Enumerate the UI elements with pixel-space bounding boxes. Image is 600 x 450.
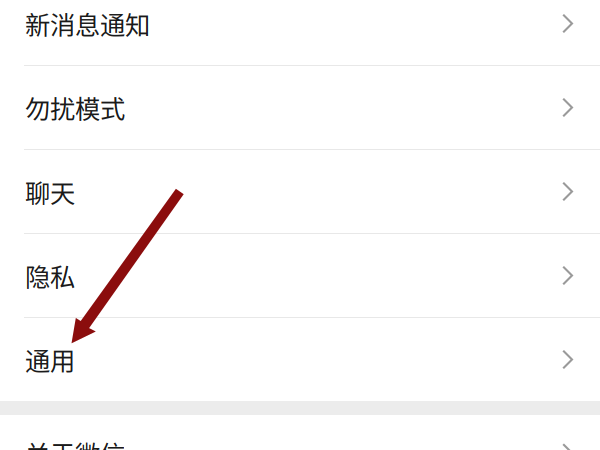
button[interactable]: 勿扰模式: [0, 66, 600, 149]
staticText: 关于微信: [25, 435, 125, 450]
staticText: 新消息通知: [25, 5, 150, 42]
button[interactable]: 关于微信: [0, 415, 600, 450]
staticText: 通用: [25, 341, 75, 378]
button[interactable]: 新消息通知: [0, 0, 600, 65]
staticText: 勿扰模式: [25, 89, 125, 126]
button[interactable]: 隐私: [0, 234, 600, 317]
button[interactable]: 通用: [0, 318, 600, 401]
staticText: 聊天: [25, 173, 75, 210]
button[interactable]: 聊天: [0, 150, 600, 233]
staticText: 隐私: [25, 257, 75, 294]
